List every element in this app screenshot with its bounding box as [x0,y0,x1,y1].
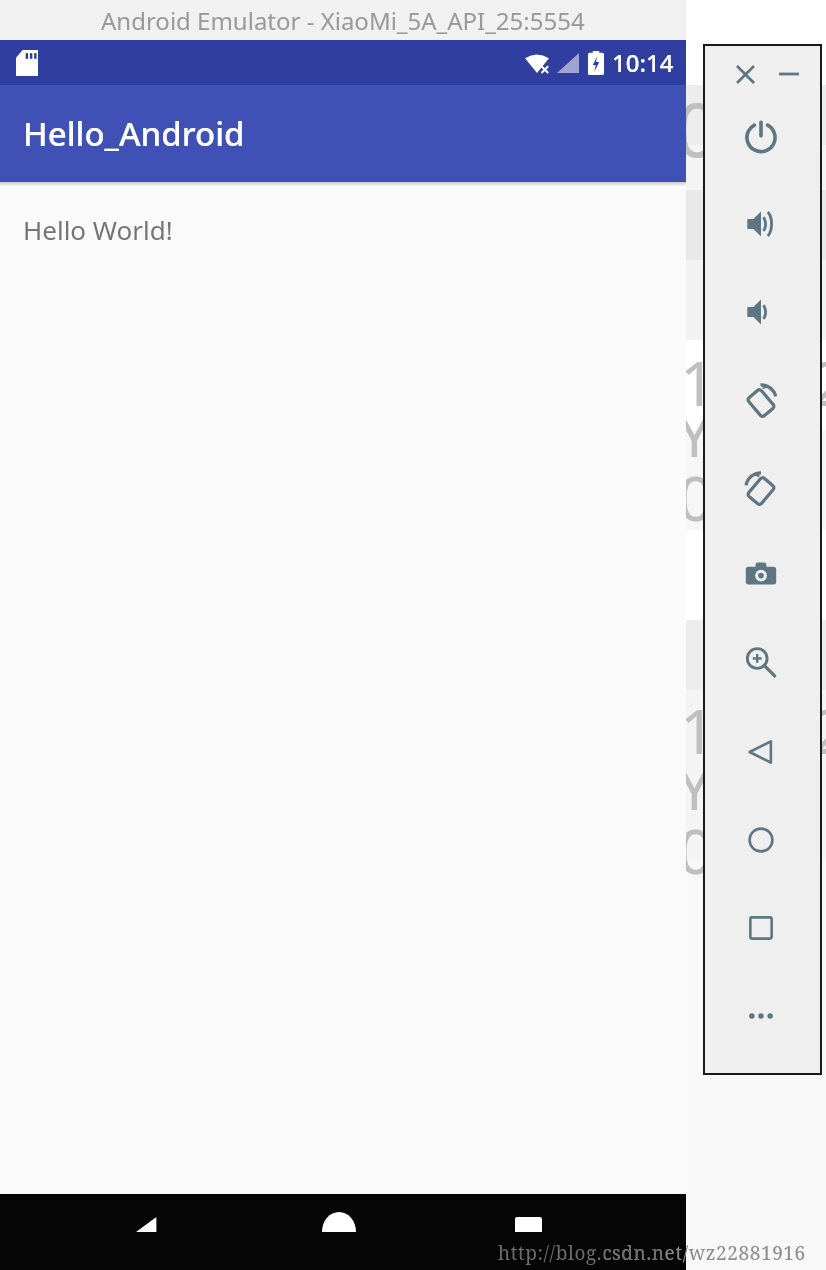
button[interactable]: Recent apps [498,1202,558,1262]
staticText: Y [678,395,711,474]
button[interactable]: Back [734,725,788,779]
staticText: Android Emulator - XiaoMi_5A_API_25:5554 [101,4,585,37]
staticText: 0 [676,78,719,179]
button[interactable]: Zoom [734,636,788,690]
button[interactable]: Volume down [734,285,788,339]
staticText: 10:14 [612,46,674,79]
button[interactable]: Overview [734,901,788,955]
button[interactable]: More [734,989,788,1043]
button[interactable]: Minimize [772,57,806,91]
button[interactable]: Rotate right [734,461,788,515]
button[interactable]: Rotate left [734,373,788,427]
button[interactable]: Take screenshot [734,548,788,602]
staticText: 0 [678,455,714,539]
staticText: Y [678,748,711,827]
button[interactable]: Home [734,813,788,867]
button[interactable]: Close [728,57,762,91]
staticText: 1 [680,340,716,424]
button[interactable]: Home [309,1202,369,1262]
button[interactable]: Back [118,1202,178,1262]
button[interactable]: Power [734,109,788,163]
staticText: Hello_Android [23,111,245,156]
staticText: 1 [680,688,716,772]
staticText: Hello World! [23,212,173,247]
staticText: 2 [812,340,826,424]
staticText: 0 [678,808,714,892]
staticText: 2 [812,688,826,772]
button[interactable]: Hello_Android [0,85,686,182]
staticText: http://blog.csdn.net/wz22881916 [498,1240,806,1266]
button[interactable]: Volume up [734,197,788,251]
staticText: http://blog.csdn.n [498,1240,665,1266]
